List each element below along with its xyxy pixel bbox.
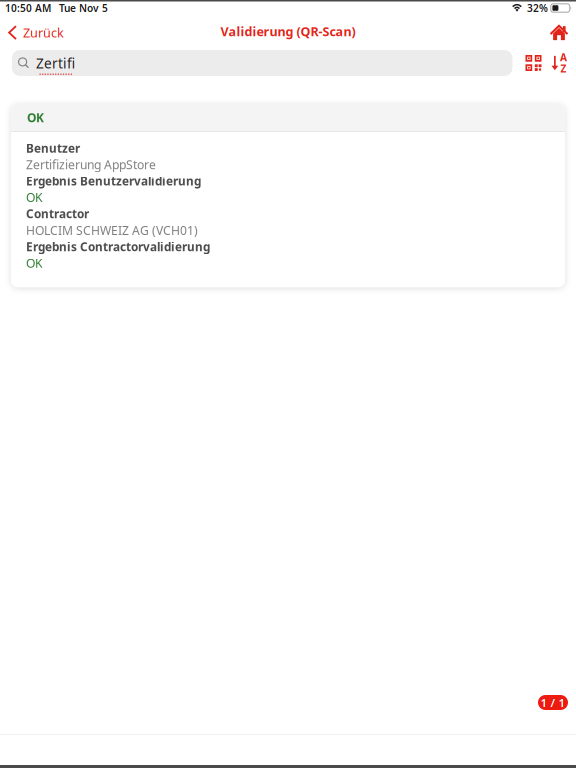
staticText: HOLCIM SCHWEIZ AG (VCH01) [26, 222, 198, 238]
staticText: Benutzer [26, 140, 80, 156]
staticText: OK [26, 255, 43, 271]
button[interactable]: 1 / 1 [538, 695, 568, 710]
button[interactable]: Sort [551, 55, 576, 70]
staticText: OK [27, 109, 44, 126]
button[interactable]: Home [550, 20, 576, 40]
staticText: Zurück [23, 24, 64, 41]
staticText: Contractor [26, 206, 89, 222]
staticText: Z [560, 62, 566, 76]
staticText: A [560, 50, 567, 64]
staticText: Ergebnis Contractorvalidierung [26, 239, 210, 255]
staticText: 1 / 1 [540, 695, 565, 710]
staticText: Tue Nov 5 [59, 1, 108, 15]
staticText: Validierung (QR-Scan) [220, 23, 355, 40]
staticText: Zertifizierung AppStore [26, 156, 156, 173]
button[interactable]: Zurück [0, 18, 64, 43]
button[interactable]: Zertifi [12, 50, 512, 76]
staticText: 32% [527, 1, 548, 15]
button[interactable]: Scan QR code [512, 55, 551, 71]
staticText: Zertifi [36, 54, 75, 72]
staticText: 10:50 AM [5, 1, 51, 15]
staticText: Ergebnis Benutzervalidierung [26, 173, 201, 189]
staticText: OK [26, 189, 43, 206]
